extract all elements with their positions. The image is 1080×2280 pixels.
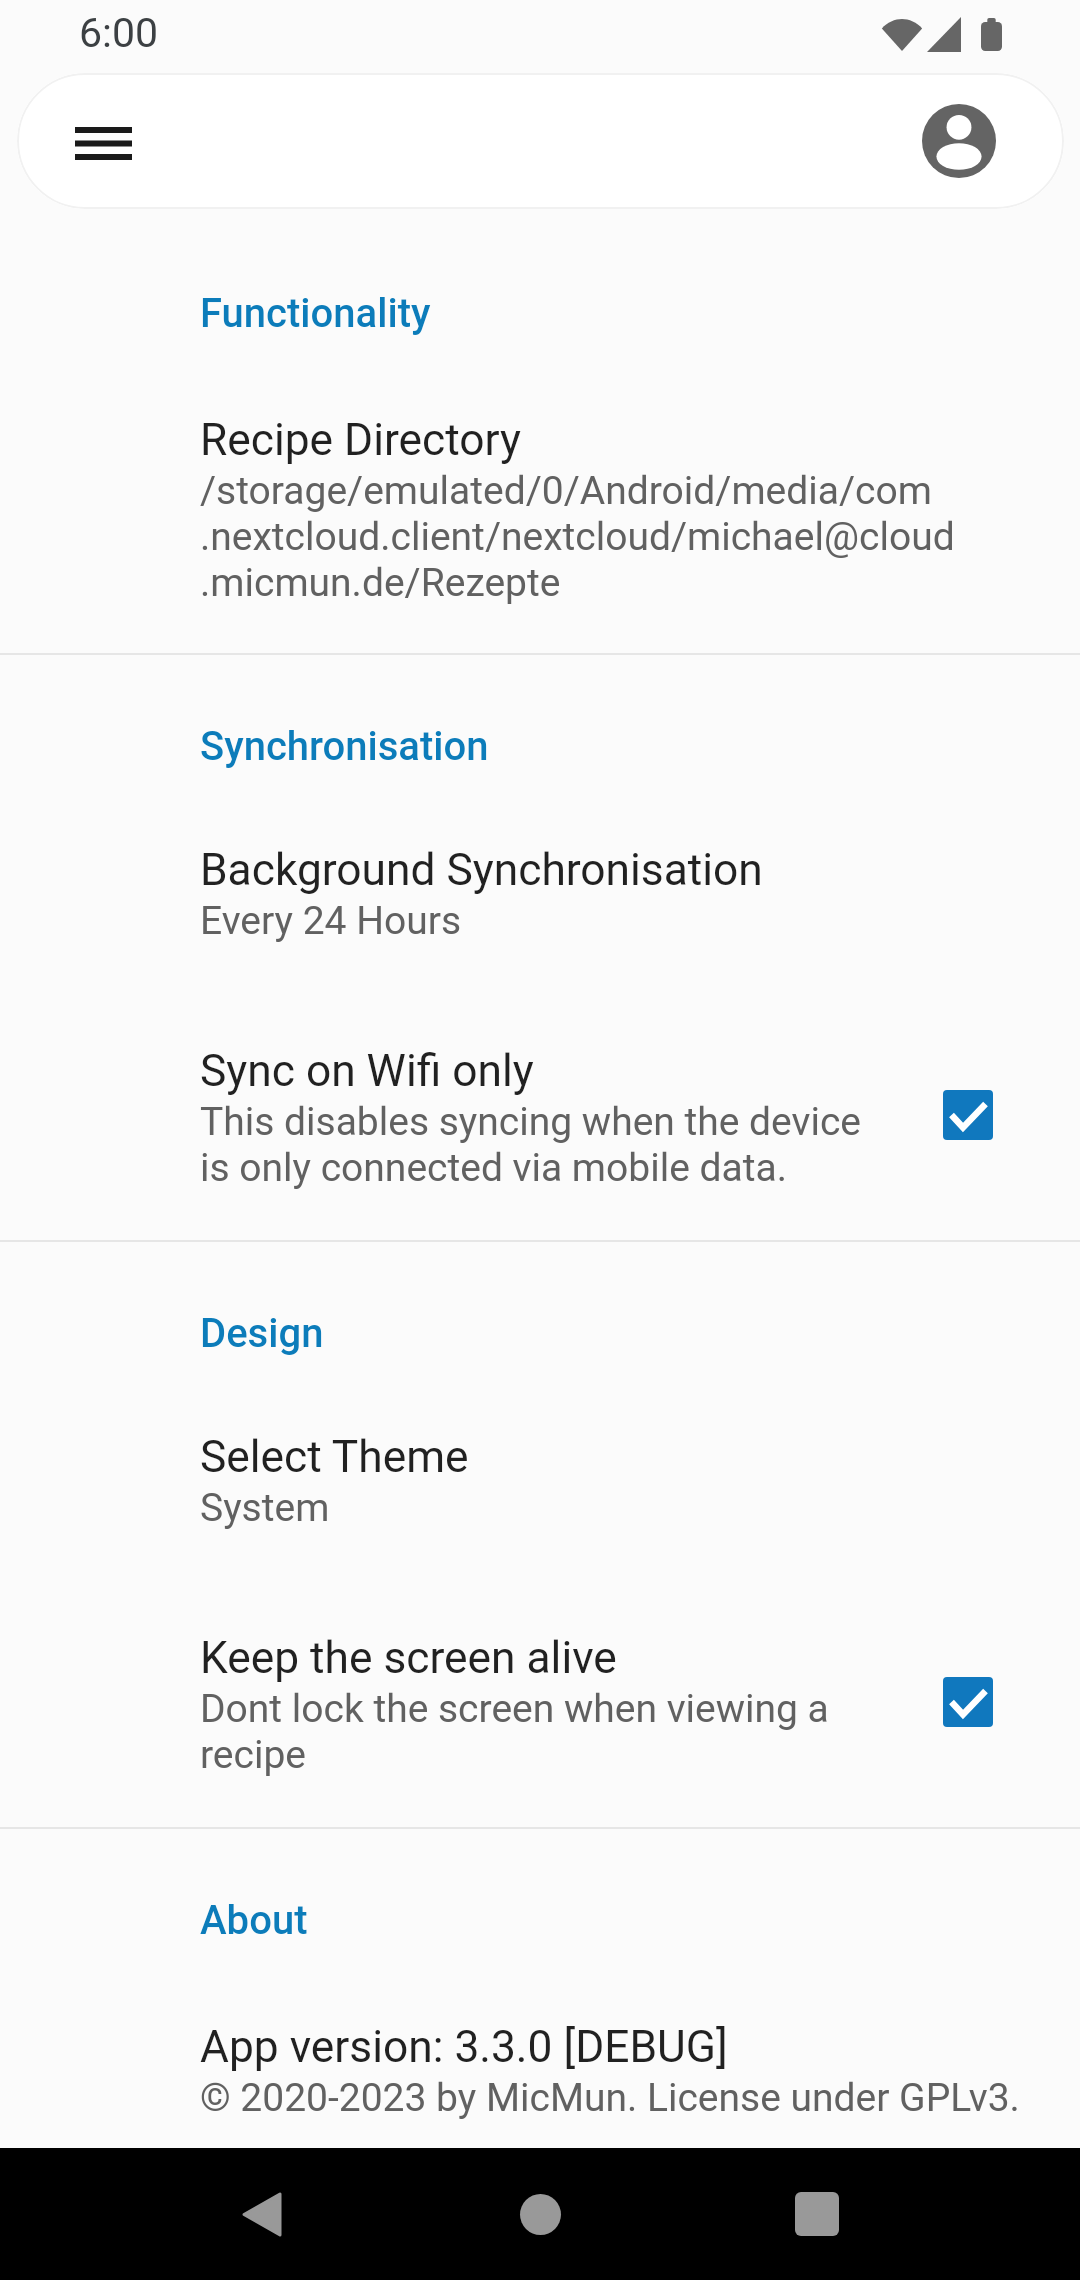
button[interactable]: Open navigation drawer xyxy=(43,83,163,203)
button[interactable]: Design xyxy=(0,1307,1080,1367)
button[interactable]: Open navigation drawer xyxy=(17,73,1064,209)
staticText: Functionality xyxy=(200,287,431,337)
button[interactable]: Recipe Directory xyxy=(0,390,1080,630)
staticText: Keep the screen alive xyxy=(200,1630,1020,1684)
button[interactable]: App version: 3.3.0 [DEBUG] xyxy=(0,1997,1080,2137)
button[interactable]: Back xyxy=(212,2164,312,2264)
button[interactable]: Synchronisation xyxy=(0,720,1080,780)
staticText: Dont lock the screen when viewing a reci… xyxy=(200,1686,1020,1778)
button[interactable]: Keep the screen alive xyxy=(0,1608,1080,1800)
button[interactable]: Background Synchronisation xyxy=(0,820,1080,960)
staticText: Synchronisation xyxy=(200,720,489,770)
staticText: System xyxy=(200,1485,1020,1531)
staticText: /storage/emulated/0/Android/media/com .n… xyxy=(200,468,1020,606)
button[interactable]: About xyxy=(0,1894,1080,1954)
button[interactable]: Recent apps xyxy=(767,2164,867,2264)
staticText: Sync on Wifi only xyxy=(200,1043,1020,1097)
staticText: About xyxy=(200,1894,308,1944)
button[interactable]: Select Theme xyxy=(0,1407,1080,1547)
staticText: Recipe Directory xyxy=(200,412,1020,466)
staticText: 6:00 xyxy=(79,9,159,57)
staticText: Every 24 Hours xyxy=(200,898,1020,944)
staticText: Design xyxy=(200,1307,324,1357)
button[interactable]: Sync on Wifi only xyxy=(0,1021,1080,1213)
button[interactable]: Functionality xyxy=(0,287,1080,347)
staticText: © 2020-2023 by MicMun. License under GPL… xyxy=(200,2075,1040,2121)
button[interactable]: Toggle Keep the screen alive xyxy=(943,1677,993,1727)
staticText: Select Theme xyxy=(200,1429,1020,1483)
button[interactable]: Account xyxy=(899,81,1019,201)
staticText: Background Synchronisation xyxy=(200,842,1020,896)
button[interactable]: Home xyxy=(490,2164,590,2264)
staticText: App version: 3.3.0 [DEBUG] xyxy=(200,2019,1020,2073)
button[interactable]: Toggle Sync on Wifi only xyxy=(943,1090,993,1140)
staticText: This disables syncing when the device is… xyxy=(200,1099,1020,1191)
